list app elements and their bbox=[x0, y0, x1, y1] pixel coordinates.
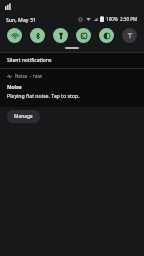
staticText: Noise bbox=[15, 73, 28, 79]
staticText: 100% bbox=[106, 16, 118, 22]
staticText: Manage bbox=[14, 113, 33, 120]
staticText: 2:30 PM bbox=[120, 16, 138, 22]
staticText: now bbox=[33, 73, 43, 79]
button[interactable]: Auto rotate bbox=[76, 28, 91, 43]
button[interactable]: Internet bbox=[7, 28, 22, 43]
staticText: Noise bbox=[7, 83, 22, 90]
button[interactable]: Bluetooth bbox=[30, 28, 45, 43]
button[interactable]: Manage bbox=[7, 110, 40, 123]
staticText: Sun, May 31 bbox=[6, 16, 36, 23]
button[interactable]: Flashlight bbox=[53, 28, 68, 43]
button[interactable]: Font size bbox=[122, 28, 137, 43]
staticText: Playing flat noise. Tap to stop. bbox=[7, 92, 80, 99]
button[interactable]: Dark theme bbox=[99, 28, 114, 43]
button[interactable]: Noise bbox=[0, 69, 144, 107]
staticText: Silent notifications bbox=[7, 57, 52, 64]
